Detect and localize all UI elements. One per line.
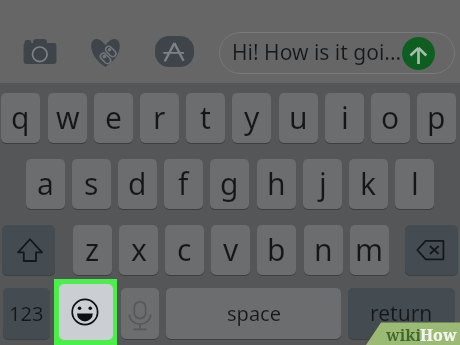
button[interactable]: e [94, 93, 133, 143]
staticText: h [267, 163, 286, 204]
staticText: wiki [386, 324, 422, 345]
staticText: j [319, 163, 327, 204]
button[interactable]: r [140, 93, 179, 143]
button[interactable]: b [257, 225, 296, 275]
button[interactable]: d [118, 159, 157, 209]
staticText: o [381, 97, 400, 138]
button[interactable]: Backspace [405, 225, 458, 275]
staticText: z [85, 229, 100, 270]
staticText: l [411, 163, 419, 204]
staticText: g [220, 163, 239, 204]
button[interactable]: z [73, 225, 112, 275]
staticText: a [37, 163, 54, 204]
button[interactable]: space [166, 288, 341, 339]
button[interactable]: Hi! How is it goi... [219, 32, 455, 74]
button[interactable]: q [1, 93, 40, 143]
staticText: u [289, 97, 308, 138]
staticText: e [105, 97, 122, 138]
button[interactable]: u [279, 93, 318, 143]
staticText: r [153, 97, 166, 138]
staticText: How [420, 324, 457, 345]
button[interactable]: Send [402, 37, 435, 70]
staticText: n [314, 229, 333, 270]
button[interactable]: l [395, 159, 434, 209]
staticText: y [244, 97, 260, 138]
staticText: f [178, 163, 189, 204]
button[interactable]: p [417, 93, 456, 143]
button[interactable]: Dictation [121, 288, 159, 339]
staticText: Hi! How is it goi... [232, 38, 402, 67]
button[interactable]: v [211, 225, 250, 275]
button[interactable]: c [165, 225, 204, 275]
button[interactable]: Shift [2, 225, 55, 275]
button[interactable]: Camera [23, 38, 57, 64]
staticText: c [177, 229, 192, 270]
staticText: v [223, 229, 239, 270]
button[interactable]: Digital Touch [88, 37, 123, 67]
button[interactable]: App Store [155, 36, 194, 67]
staticText: b [267, 229, 286, 270]
button[interactable]: a [26, 159, 65, 209]
staticText: return [370, 299, 433, 328]
button[interactable]: n [304, 225, 343, 275]
button[interactable]: h [257, 159, 296, 209]
button[interactable]: Emoji [59, 284, 113, 340]
staticText: s [84, 163, 99, 204]
button[interactable]: g [210, 159, 249, 209]
staticText: k [360, 163, 377, 204]
staticText: i [341, 97, 349, 138]
staticText: q [11, 97, 30, 138]
button[interactable]: m [350, 225, 389, 275]
button[interactable]: 123 [3, 288, 50, 339]
button[interactable]: x [119, 225, 158, 275]
button[interactable]: t [186, 93, 225, 143]
button[interactable]: j [303, 159, 342, 209]
button[interactable]: w [48, 93, 87, 143]
button[interactable]: return [348, 288, 455, 339]
staticText: m [355, 229, 384, 270]
button[interactable]: k [349, 159, 388, 209]
button[interactable]: o [371, 93, 410, 143]
button[interactable]: i [325, 93, 364, 143]
button[interactable]: f [164, 159, 203, 209]
staticText: t [200, 97, 211, 138]
staticText: p [427, 97, 446, 138]
button[interactable]: s [72, 159, 111, 209]
button[interactable]: y [232, 93, 271, 143]
staticText: space [227, 300, 281, 327]
staticText: w [56, 97, 80, 138]
staticText: 123 [9, 300, 44, 327]
staticText: x [131, 229, 147, 270]
staticText: d [128, 163, 147, 204]
